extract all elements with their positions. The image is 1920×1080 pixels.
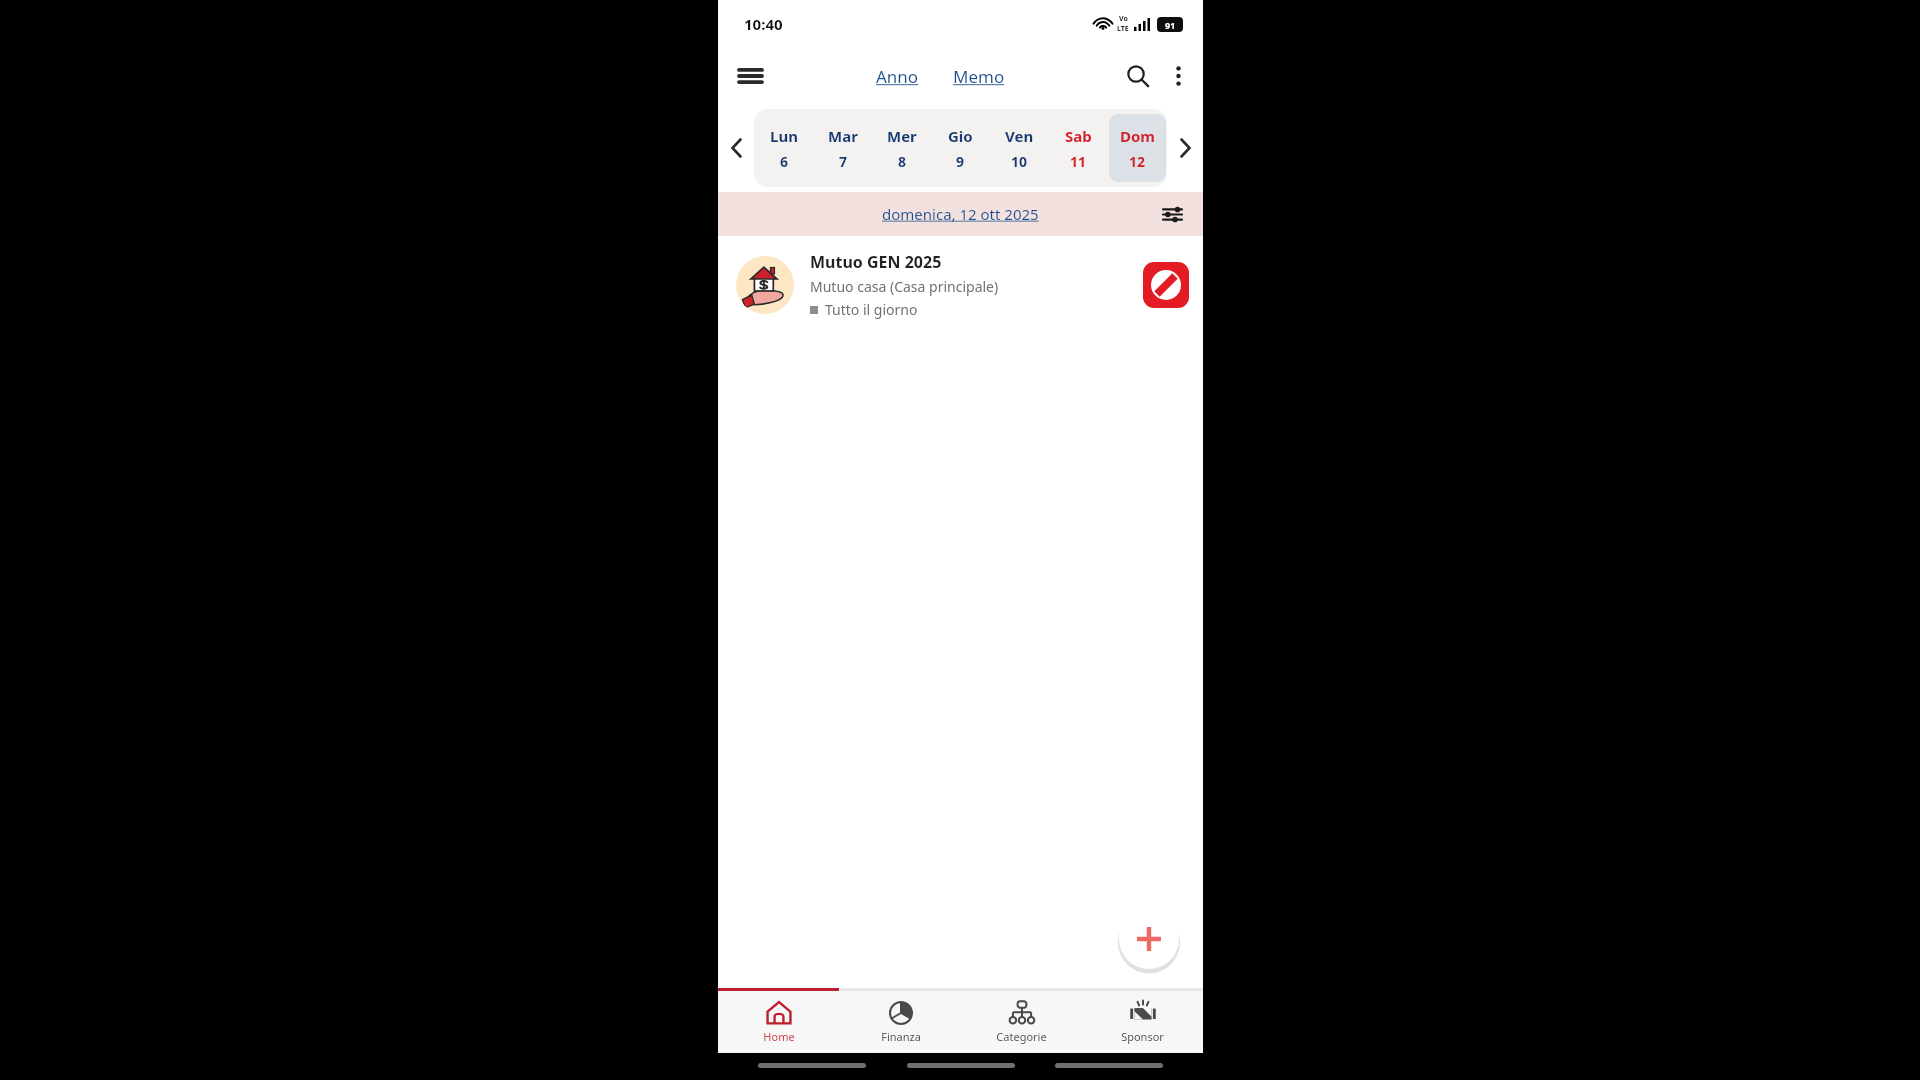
staticText: Dom — [1120, 126, 1155, 146]
staticText: 8 — [898, 152, 907, 171]
staticText: Finanza — [881, 1029, 921, 1044]
button[interactable]: Sponsor — [1082, 991, 1203, 1053]
staticText: Mar — [828, 126, 858, 146]
staticText: Ven — [1005, 126, 1034, 146]
staticText: 10:40 — [744, 14, 783, 34]
button[interactable]: Dom — [1109, 114, 1166, 182]
button[interactable]: Menu — [728, 54, 772, 98]
button[interactable]: Aggiungi — [1119, 909, 1179, 969]
staticText: Gio — [948, 126, 973, 146]
button[interactable]: Mutuo GEN 2025 — [718, 236, 1203, 334]
staticText: domenica, 12 ott 2025 — [882, 204, 1039, 224]
button[interactable]: Mer — [873, 114, 930, 182]
button[interactable]: Anno — [876, 65, 919, 88]
staticText: LTE — [1117, 24, 1129, 34]
button[interactable]: Filtri — [1155, 197, 1189, 231]
staticText: 12 — [1129, 152, 1146, 171]
staticText: 6 — [780, 152, 789, 171]
button[interactable]: Settimana successiva — [1167, 130, 1203, 166]
staticText: 91 — [1165, 19, 1176, 31]
button[interactable]: Non pagato — [1143, 262, 1189, 308]
staticText: Lun — [770, 126, 798, 146]
button[interactable]: Settimana precedente — [718, 130, 754, 166]
staticText: Mutuo GEN 2025 — [810, 251, 942, 273]
button[interactable]: Altre opzioni — [1159, 57, 1197, 95]
button[interactable]: Home — [718, 991, 840, 1053]
button[interactable]: Categorie — [961, 991, 1082, 1053]
staticText: Home — [763, 1029, 795, 1044]
staticText: 10 — [1011, 152, 1028, 171]
staticText: Mer — [887, 126, 917, 146]
button[interactable]: Gio — [932, 114, 989, 182]
staticText: Categorie — [996, 1029, 1047, 1044]
staticText: 9 — [956, 152, 965, 171]
button[interactable]: Finanza — [840, 991, 961, 1053]
staticText: Vo — [1119, 14, 1128, 24]
staticText: 7 — [839, 152, 848, 171]
button[interactable]: Ven — [991, 114, 1048, 182]
button[interactable]: Memo — [953, 65, 1005, 88]
staticText: Sab — [1065, 126, 1092, 146]
button[interactable]: Sab — [1050, 114, 1107, 182]
staticText: Sponsor — [1121, 1029, 1164, 1044]
staticText: Tutto il giorno — [825, 300, 918, 319]
button[interactable]: Mar — [814, 114, 871, 182]
staticText: 11 — [1070, 152, 1087, 171]
button[interactable]: domenica, 12 ott 2025 — [718, 192, 1203, 236]
staticText: Mutuo casa (Casa principale) — [810, 277, 999, 296]
button[interactable]: Cerca — [1117, 55, 1159, 97]
button[interactable]: Lun — [755, 114, 812, 182]
